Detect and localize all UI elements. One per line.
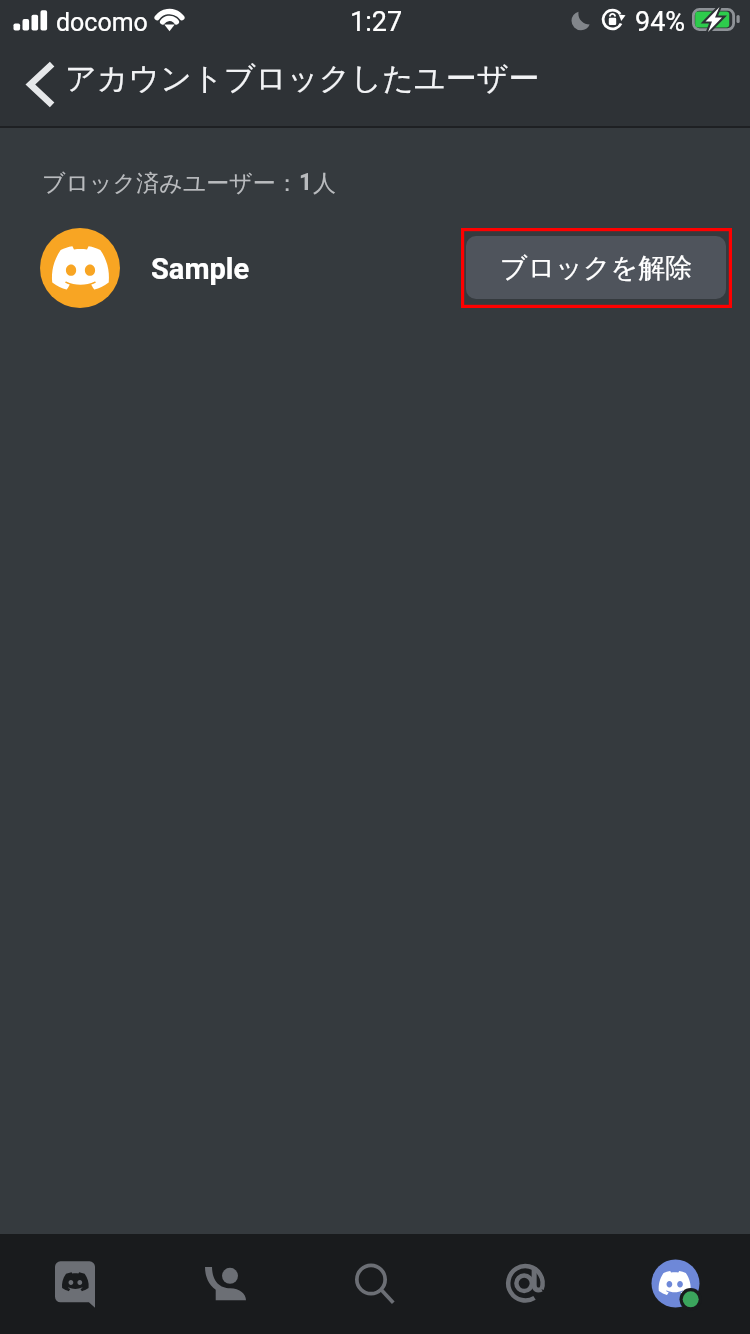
button[interactable]	[0, 223, 750, 313]
button[interactable]: Profile	[600, 1234, 750, 1334]
staticText: 1	[299, 169, 313, 196]
staticText: ブロック済みユーザー：	[42, 169, 299, 198]
staticText: 人	[313, 169, 336, 198]
staticText: docomo	[56, 8, 148, 37]
button[interactable]: Friends	[150, 1234, 300, 1334]
staticText: Sample	[151, 252, 250, 286]
staticText: 94%	[635, 6, 686, 38]
staticText: 1:27	[350, 6, 403, 38]
button[interactable]: Mentions	[450, 1234, 600, 1334]
button[interactable]: Search	[300, 1234, 450, 1334]
button[interactable]: ブロックを解除	[466, 236, 726, 299]
button[interactable]: Servers	[0, 1234, 150, 1334]
staticText: ブロックを解除	[500, 251, 693, 285]
button[interactable]: Back	[13, 57, 67, 111]
staticText: アカウントブロックしたユーザー	[65, 59, 540, 98]
